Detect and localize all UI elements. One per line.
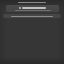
button[interactable]: Action <box>3 14 61 18</box>
button[interactable]: Open tile <box>6 5 59 12</box>
